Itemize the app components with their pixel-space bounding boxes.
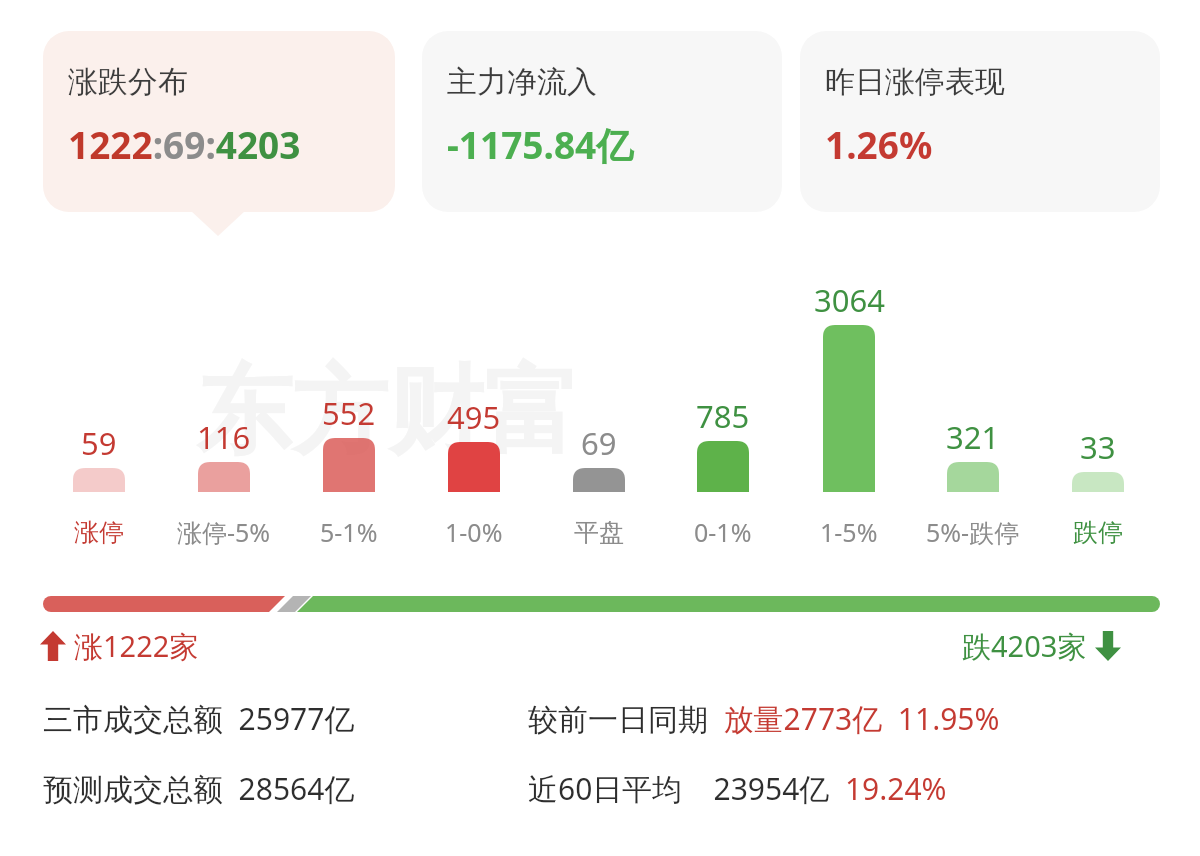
button[interactable]: 0-1%	[653, 512, 793, 552]
button[interactable]: 涨停	[29, 512, 169, 552]
button[interactable]: 跌停	[1028, 512, 1168, 552]
staticText: 0-1%	[694, 515, 752, 549]
staticText: 1222:69:4203	[68, 119, 301, 169]
button[interactable]: 主力净流入	[422, 31, 782, 212]
staticText: 5-1%	[320, 515, 378, 549]
staticText: 1-0%	[445, 515, 503, 549]
staticText: 三市成交总额 25977亿	[43, 698, 355, 739]
staticText: 5%-跌停	[926, 515, 1020, 549]
button[interactable]: 1-5%	[779, 512, 919, 552]
staticText: 预测成交总额 28564亿	[43, 768, 355, 809]
staticText: 3064	[814, 279, 885, 321]
staticText: 涨跌分布	[68, 63, 188, 101]
staticText: 跌4203家	[962, 626, 1087, 666]
button[interactable]: 涨跌分布	[43, 31, 395, 212]
staticText: 1-5%	[820, 515, 878, 549]
staticText: 近60日平均 23954亿 19.24%	[528, 768, 947, 809]
staticText: 59	[81, 422, 117, 464]
button[interactable]: 平盘	[529, 512, 669, 552]
staticText: 321	[946, 416, 1000, 458]
staticText: 平盘	[574, 517, 624, 548]
button[interactable]: 涨1222家	[40, 624, 199, 668]
staticText: 涨停	[74, 517, 124, 548]
button[interactable]: 涨停-5%	[154, 512, 294, 552]
staticText: 涨1222家	[74, 626, 199, 666]
staticText: 主力净流入	[447, 63, 597, 101]
staticText: 东方财富	[196, 352, 580, 473]
staticText: 552	[322, 392, 376, 434]
button[interactable]: 5-1%	[279, 512, 419, 552]
staticText: 涨停-5%	[177, 515, 271, 549]
staticText: 昨日涨停表现	[825, 63, 1005, 101]
button[interactable]: 昨日涨停表现	[800, 31, 1160, 212]
button[interactable]: 跌4203家	[962, 624, 1121, 668]
button[interactable]: 5%-跌停	[903, 512, 1043, 552]
staticText: -1175.84亿	[447, 119, 634, 170]
staticText: 跌停	[1073, 517, 1123, 548]
staticText: 495	[447, 396, 501, 438]
button[interactable]: 1-0%	[404, 512, 544, 552]
staticText: 较前一日同期 放量2773亿 11.95%	[528, 698, 1000, 739]
staticText: 116	[197, 416, 251, 458]
staticText: 69	[581, 422, 617, 464]
staticText: 785	[696, 395, 750, 437]
staticText: 1.26%	[825, 119, 933, 169]
staticText: 33	[1080, 426, 1116, 468]
